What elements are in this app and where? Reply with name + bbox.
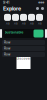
staticText: 9:41: [3, 0, 9, 5]
button[interactable]: Aa: [36, 14, 43, 25]
button[interactable]: Sustainable: [3, 29, 44, 38]
staticText: Row: [4, 47, 10, 50]
button[interactable]: Row: [2, 40, 45, 45]
staticText: Discover: [16, 57, 30, 60]
button[interactable]: Row: [2, 46, 45, 51]
button[interactable]: Row: [2, 52, 45, 57]
button[interactable]: Aa: [4, 14, 11, 25]
button[interactable]: Aa: [28, 14, 35, 25]
button[interactable]: Notifications: [36, 7, 39, 10]
staticText: Aa: [38, 22, 41, 25]
button[interactable]: Profile: [39, 7, 44, 10]
staticText: Explore: [3, 5, 21, 12]
button[interactable]: Aa: [20, 14, 27, 25]
staticText: Sustainable: [4, 30, 23, 34]
staticText: Row: [4, 53, 10, 56]
staticText: Aa: [30, 22, 33, 25]
staticText: Aa: [14, 22, 17, 25]
button[interactable]: Aa: [12, 14, 19, 25]
staticText: Row: [4, 41, 10, 44]
staticText: Aa: [6, 22, 9, 25]
staticText: ●●●: [38, 1, 44, 4]
staticText: Aa: [22, 22, 25, 25]
